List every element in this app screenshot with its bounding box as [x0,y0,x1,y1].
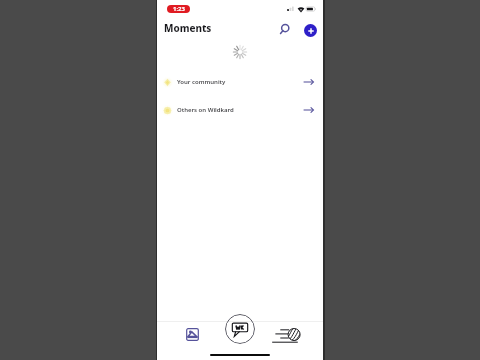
button[interactable]: Others on Wildkard [157,100,323,120]
staticText: Others on Wildkard [177,106,234,114]
staticText: 1:23 [173,5,185,13]
button[interactable]: Photos [182,324,202,344]
staticText: Moments [164,21,212,34]
staticText: Your community [177,78,226,86]
button[interactable]: Your community [157,72,323,92]
button[interactable]: Add moment [304,24,317,37]
button[interactable]: Explore [271,325,301,344]
button[interactable]: Wildkard [225,314,255,344]
button[interactable]: Search [277,21,293,37]
button[interactable]: Moments [164,20,212,34]
